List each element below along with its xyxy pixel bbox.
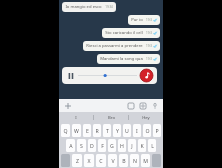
staticText: 19:3 <box>146 31 152 35</box>
button[interactable]: B <box>119 154 128 167</box>
staticText: Bro <box>108 115 115 121</box>
staticText: T <box>106 127 109 134</box>
button[interactable]: Attach <box>63 101 72 110</box>
button[interactable]: I <box>59 112 93 123</box>
staticText: D <box>90 142 94 149</box>
staticText: P <box>155 127 159 134</box>
button[interactable]: Riesci a passarmi a prendere <box>83 41 160 51</box>
button[interactable]: Bro <box>94 112 128 123</box>
button[interactable]: E <box>83 124 91 137</box>
button[interactable]: I <box>133 124 141 137</box>
button[interactable]: Voice message <box>150 101 159 110</box>
button[interactable]: X <box>84 154 94 167</box>
button[interactable]: U <box>123 124 131 137</box>
staticText: Mandami la song qua <box>100 56 143 62</box>
staticText: 19:3 <box>146 18 152 22</box>
button[interactable]: T <box>103 124 111 137</box>
button[interactable]: Hey <box>129 112 163 123</box>
button[interactable]: W <box>72 124 81 137</box>
staticText: 19:34 <box>105 5 113 9</box>
staticText: C <box>99 157 103 164</box>
button[interactable]: Z <box>72 154 82 167</box>
staticText: N <box>133 157 137 164</box>
staticText: Z <box>76 157 79 164</box>
staticText: Sto caricando il cell <box>105 30 143 36</box>
staticText: U <box>125 127 129 134</box>
staticText: Y <box>116 127 119 134</box>
button[interactable]: S <box>77 139 86 152</box>
button[interactable]: Q <box>61 124 70 137</box>
button[interactable]: Y <box>113 124 121 137</box>
button[interactable]: Pause <box>62 67 157 84</box>
button[interactable]: Shift <box>61 154 70 167</box>
staticText: Hey <box>142 115 150 121</box>
button[interactable]: Pur io <box>128 15 160 25</box>
button[interactable]: J <box>128 139 136 152</box>
button[interactable]: K <box>138 139 146 152</box>
button[interactable]: Camera <box>138 101 147 110</box>
button[interactable]: N <box>130 154 139 167</box>
button[interactable]: H <box>118 139 126 152</box>
button[interactable]: O <box>143 124 151 137</box>
staticText: X <box>87 157 91 164</box>
staticText: Io mangio ed esco <box>65 4 102 10</box>
staticText: I <box>75 115 77 121</box>
staticText: S <box>80 142 83 149</box>
staticText: I <box>136 127 138 134</box>
staticText: V <box>111 157 115 164</box>
button[interactable]: V <box>108 154 117 167</box>
button[interactable]: Mandami la song qua <box>97 54 160 64</box>
button[interactable]: D <box>88 139 96 152</box>
button[interactable]: G <box>108 139 116 152</box>
staticText: B <box>122 157 126 164</box>
button[interactable]: A <box>66 139 75 152</box>
button[interactable]: Sto caricando il cell <box>102 28 160 38</box>
staticText: G <box>110 142 114 149</box>
staticText: Pur io <box>131 17 143 23</box>
button[interactable]: Pause <box>66 71 75 80</box>
button[interactable]: Io mangio ed esco <box>62 2 116 12</box>
staticText: K <box>140 142 144 149</box>
staticText: Q <box>63 127 68 134</box>
button[interactable]: R <box>93 124 101 137</box>
button[interactable]: F <box>98 139 106 152</box>
button[interactable]: P <box>153 124 161 137</box>
staticText: 19:3 <box>146 44 152 48</box>
staticText: F <box>101 142 104 149</box>
staticText: J <box>131 142 133 149</box>
staticText: O <box>145 127 150 134</box>
staticText: E <box>86 127 89 134</box>
button[interactable]: Stickers <box>126 101 135 110</box>
button[interactable]: M <box>141 154 150 167</box>
staticText: L <box>151 142 154 149</box>
button[interactable]: L <box>148 139 156 152</box>
staticText: 19:3 <box>146 57 152 61</box>
staticText: W <box>74 127 79 134</box>
staticText: M <box>143 157 148 164</box>
button[interactable]: C <box>96 154 106 167</box>
staticText: Riesci a passarmi a prendere <box>86 43 143 49</box>
staticText: R <box>95 127 99 134</box>
staticText: A <box>69 142 73 149</box>
button[interactable]: Backspace <box>152 154 161 167</box>
staticText: H <box>120 142 124 149</box>
